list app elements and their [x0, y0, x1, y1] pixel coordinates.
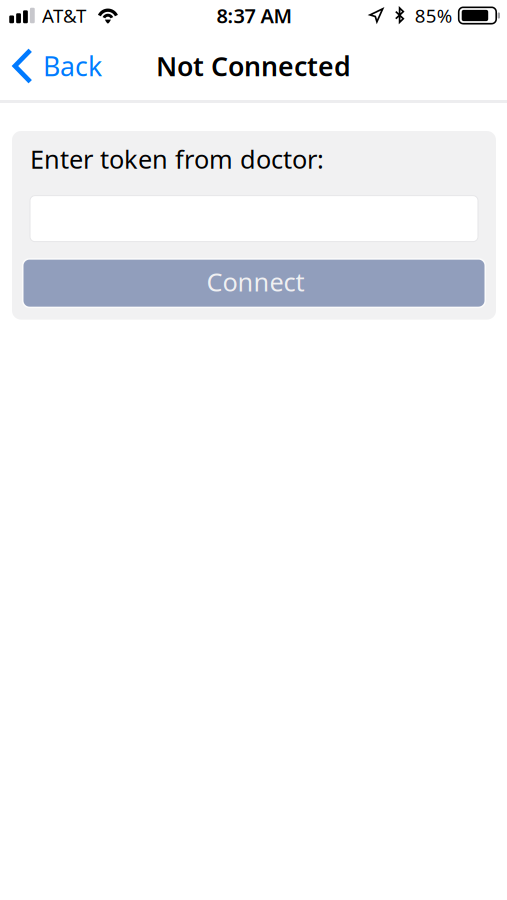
staticText: 8:37 AM — [216, 2, 292, 29]
staticText: Enter token from doctor: — [30, 142, 324, 176]
staticText: 85% — [415, 3, 453, 28]
staticText: Not Connected — [156, 48, 351, 84]
staticText: Connect — [206, 265, 304, 298]
staticText: AT&T — [42, 3, 86, 28]
staticText: Back — [43, 48, 102, 84]
button[interactable]: Token — [30, 196, 478, 242]
button[interactable]: Connect — [22, 258, 486, 308]
button[interactable]: Back — [0, 33, 116, 99]
